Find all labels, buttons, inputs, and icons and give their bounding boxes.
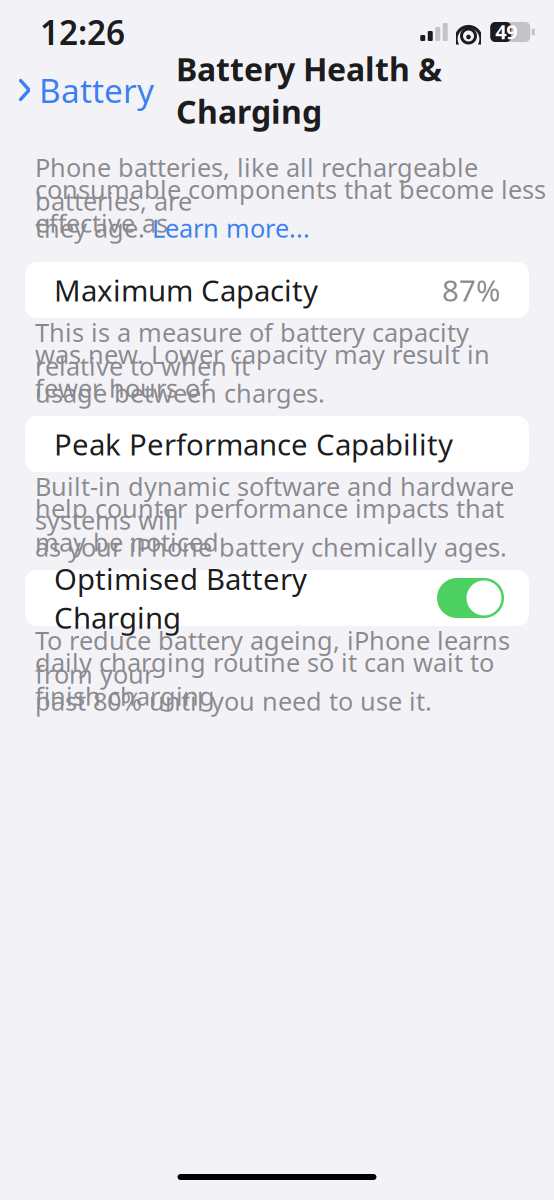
- button[interactable]: Battery: [0, 65, 162, 115]
- staticText: usage between charges.: [35, 376, 325, 410]
- staticText: help counter performance impacts that ma…: [35, 491, 504, 559]
- staticText: past 80% until you need to use it.: [35, 684, 432, 718]
- staticText: Optimised Battery Charging: [54, 559, 307, 637]
- staticText: Phone batteries, like all rechargeable b…: [35, 150, 478, 218]
- staticText: Battery Health & Charging: [176, 47, 442, 132]
- staticText: 12:26: [40, 10, 125, 54]
- staticText: To reduce battery ageing, iPhone learns …: [35, 623, 510, 691]
- staticText: they age.: [35, 211, 152, 245]
- staticText: 87%: [442, 270, 500, 309]
- staticText: This is a measure of battery capacity re…: [35, 315, 469, 383]
- staticText: Built-in dynamic software and hardware s…: [35, 469, 514, 537]
- staticText: 49: [495, 18, 517, 45]
- staticText: as your iPhone battery chemically ages.: [35, 530, 507, 564]
- staticText: consumable components that become less e…: [35, 172, 546, 240]
- staticText: was new. Lower capacity may result in fe…: [35, 337, 490, 405]
- staticText: Battery: [39, 68, 154, 112]
- button[interactable]: Optimised Battery Charging: [437, 578, 504, 618]
- button[interactable]: Learn more...: [152, 211, 310, 245]
- button[interactable]: Maximum Capacity: [25, 262, 529, 318]
- staticText: Learn more...: [152, 211, 310, 245]
- button[interactable]: Peak Performance Capability: [25, 416, 529, 472]
- staticText: Maximum Capacity: [54, 270, 318, 309]
- staticText: daily charging routine so it can wait to…: [35, 645, 494, 713]
- staticText: Peak Performance Capability: [54, 424, 453, 463]
